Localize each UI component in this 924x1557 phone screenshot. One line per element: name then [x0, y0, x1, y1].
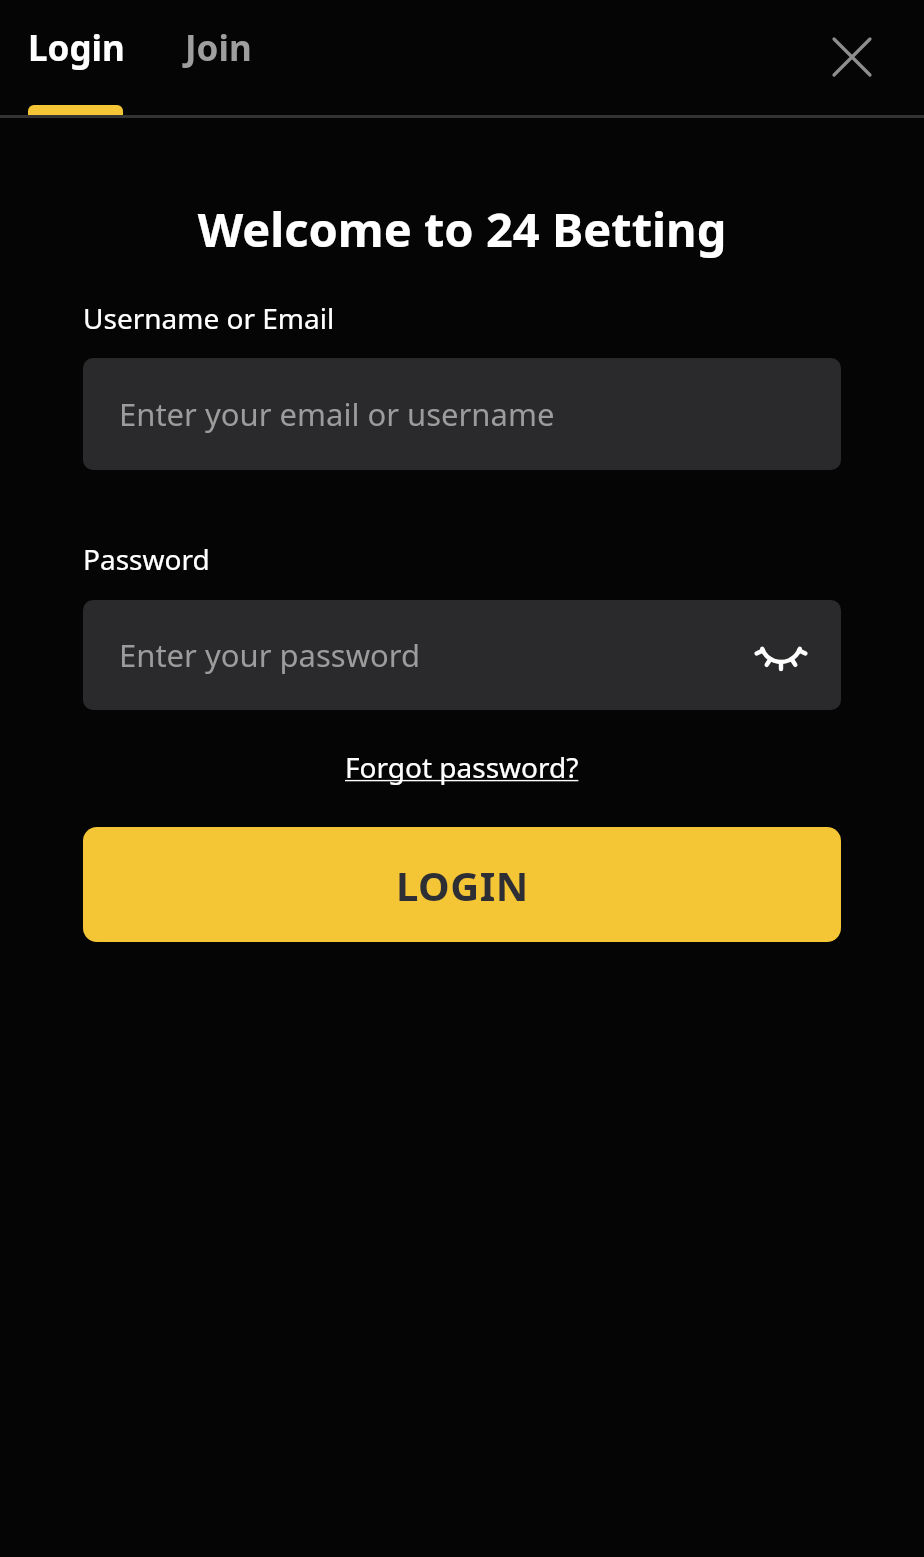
staticText: Enter your email or username: [119, 393, 555, 435]
staticText: Password: [83, 540, 210, 578]
staticText: Join: [185, 24, 252, 72]
button[interactable]: Forgot password?: [345, 748, 579, 786]
staticText: Login: [28, 24, 125, 72]
button[interactable]: [834, 39, 870, 75]
button[interactable]: Login: [28, 24, 125, 72]
staticText: Forgot password?: [345, 748, 579, 786]
staticText: Enter your password: [119, 634, 421, 676]
button[interactable]: Join: [185, 24, 252, 72]
button[interactable]: LOGIN: [83, 827, 841, 942]
button[interactable]: Enter your email or username: [83, 358, 841, 470]
button[interactable]: Enter your password: [83, 600, 841, 710]
staticText: Welcome to 24 Betting: [83, 197, 841, 261]
button[interactable]: [755, 638, 807, 672]
staticText: LOGIN: [396, 858, 529, 912]
staticText: Username or Email: [83, 299, 335, 337]
